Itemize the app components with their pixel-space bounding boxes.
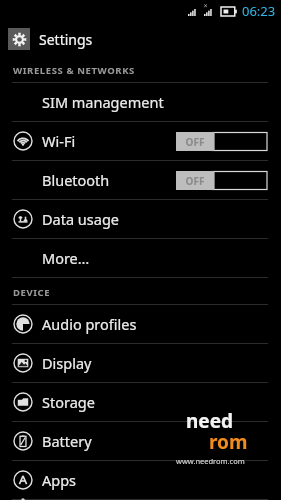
staticText: OFF — [176, 135, 214, 149]
staticText: Display — [42, 353, 92, 373]
staticText: www.needrom.com — [176, 456, 245, 466]
button[interactable]: Toggle off — [176, 132, 268, 151]
staticText: Data usage — [42, 209, 119, 229]
button[interactable]: SIM management — [0, 83, 281, 121]
staticText: Battery — [42, 431, 92, 451]
button[interactable]: More… — [0, 239, 281, 277]
button[interactable]: Wi-Fi — [0, 122, 281, 160]
staticText: Storage — [42, 392, 95, 412]
staticText: More… — [42, 248, 90, 268]
staticText: Audio profiles — [42, 314, 137, 334]
button[interactable]: Battery — [0, 422, 281, 460]
button[interactable]: Display — [0, 344, 281, 382]
button[interactable]: Toggle off — [176, 171, 268, 190]
button[interactable]: Audio profiles — [0, 305, 281, 343]
staticText: OFF — [176, 174, 214, 188]
staticText: DEVICE — [13, 286, 51, 299]
staticText: Wi-Fi — [42, 131, 76, 151]
button[interactable]: Data usage — [0, 200, 281, 238]
staticText: Settings — [39, 30, 93, 49]
staticText: SIM management — [42, 92, 164, 112]
staticText: WIRELESS & NETWORKS — [13, 64, 135, 77]
button[interactable]: Bluetooth — [0, 161, 281, 199]
staticText: need — [186, 408, 234, 434]
staticText: 06:23 — [242, 2, 276, 20]
staticText: rom — [209, 429, 248, 455]
staticText: Bluetooth — [42, 170, 110, 190]
button[interactable]: Storage — [0, 383, 281, 421]
button[interactable]: Settings — [0, 22, 281, 56]
button[interactable]: Apps — [0, 461, 281, 499]
staticText: Apps — [42, 470, 77, 490]
